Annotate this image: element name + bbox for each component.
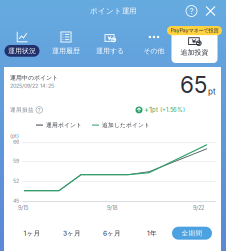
staticText: 65 [180,71,207,98]
staticText: 1年 [147,229,157,237]
staticText: 運用損益 [10,106,34,113]
staticText: 運用履歴 [52,46,80,55]
button[interactable]: 1年 [132,227,172,240]
staticText: 3ヶ月 [63,229,81,237]
button[interactable]: その他 [132,22,176,67]
button[interactable]: Help [186,5,197,16]
staticText: 運用中のポイント [10,74,58,81]
staticText: (+1.56%) [160,106,185,113]
staticText: 6ヶ月 [103,229,121,237]
staticText: 1ヶ月 [23,229,40,237]
staticText: 運用ポイント [46,121,82,129]
staticText: その他 [143,46,164,55]
staticText: ? [38,107,41,113]
staticText: (pt) [10,133,19,139]
staticText: ? [189,6,193,16]
button[interactable]: 6ヶ月 [92,227,132,240]
button[interactable]: 全期間 [172,227,212,240]
staticText: 9/18 [107,205,117,211]
staticText: 66 [13,139,19,145]
button[interactable]: 運用履歴 [44,22,88,67]
staticText: 運用する [96,46,124,55]
button[interactable]: Close [205,5,216,16]
staticText: ポイント運用 [90,6,136,16]
staticText: 52 [13,178,19,184]
button[interactable]: 運用状況 [0,22,44,67]
staticText: 追加したポイント [102,121,150,129]
button[interactable]: 1ヶ月 [12,227,52,240]
staticText: 59 [13,158,19,164]
staticText: 9/15 [18,205,28,211]
staticText: PayPayマネーで投資 [170,27,218,34]
button[interactable]: 3ヶ月 [52,227,92,240]
button[interactable]: 運用する [88,22,132,67]
button[interactable]: 追加投資 [167,22,222,63]
staticText: 全期間 [181,229,202,237]
staticText: +1 [144,105,152,114]
staticText: 45 [13,198,19,204]
staticText: 2025/09/22 14:25 [10,82,54,89]
staticText: 追加投資 [180,48,208,57]
staticText: pt [152,106,158,113]
staticText: pt [208,87,216,96]
staticText: 運用状況 [8,46,36,55]
staticText: 9/22 [193,205,204,211]
